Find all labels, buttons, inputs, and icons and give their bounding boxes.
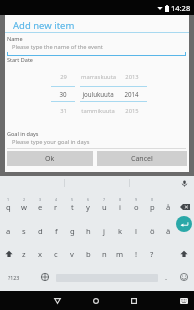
button[interactable]: Change language <box>36 267 54 287</box>
button[interactable]: c <box>48 243 64 264</box>
button[interactable]: e <box>32 196 48 217</box>
staticText: ! <box>135 249 138 259</box>
staticText: i <box>119 202 121 212</box>
staticText: Start Date <box>7 56 33 63</box>
button[interactable]: Shift <box>0 243 18 264</box>
button[interactable]: h <box>80 220 96 241</box>
button[interactable]: ?123 <box>1 267 27 287</box>
staticText: v <box>70 249 74 259</box>
button[interactable]: o <box>128 196 144 217</box>
staticText: m <box>116 249 124 259</box>
button[interactable]: r <box>48 196 64 217</box>
button[interactable]: k <box>112 220 128 241</box>
button[interactable]: ! <box>128 243 144 264</box>
staticText: 14:28 <box>171 3 191 13</box>
button[interactable]: . <box>159 267 173 287</box>
button[interactable]: marraskuuta <box>74 70 122 84</box>
button[interactable]: Recent apps <box>122 291 146 310</box>
staticText: a <box>6 226 11 236</box>
staticText: 0 <box>151 197 154 202</box>
staticText: 4 <box>55 197 58 202</box>
staticText: t <box>71 202 74 212</box>
button[interactable]: v <box>64 243 80 264</box>
button[interactable]: f <box>48 220 64 241</box>
staticText: Please type your goal in days <box>12 138 90 146</box>
staticText: 2015 <box>125 107 139 115</box>
staticText: o <box>134 202 139 212</box>
staticText: l <box>135 226 137 236</box>
staticText: w <box>21 202 27 212</box>
staticText: 7 <box>103 197 106 202</box>
button[interactable]: Back <box>45 291 69 310</box>
staticText: j <box>103 226 105 236</box>
button[interactable]: a <box>0 220 16 241</box>
staticText: 9 <box>135 197 138 202</box>
button[interactable]: 30 <box>45 87 81 101</box>
staticText: e <box>38 202 43 212</box>
button[interactable]: 2013 <box>110 70 153 84</box>
button[interactable]: t <box>64 196 80 217</box>
button[interactable]: u <box>96 196 112 217</box>
staticText: 3 <box>39 197 42 202</box>
button[interactable]: i <box>112 196 128 217</box>
staticText: f <box>55 226 58 236</box>
staticText: p <box>150 202 155 212</box>
button[interactable]: Cancel <box>97 151 187 166</box>
button[interactable]: j <box>96 220 112 241</box>
button[interactable]: w <box>16 196 32 217</box>
button[interactable]: 31 <box>45 104 81 118</box>
staticText: s <box>22 226 26 236</box>
staticText: 29 <box>60 73 67 81</box>
button[interactable]: d <box>32 220 48 241</box>
button[interactable]: Voice input <box>178 177 191 190</box>
staticText: marraskuuta <box>81 73 116 81</box>
staticText: Name <box>7 35 23 42</box>
staticText: b <box>86 249 91 259</box>
button[interactable]: Ok <box>7 151 93 166</box>
button[interactable]: ö <box>144 220 160 241</box>
staticText: z <box>22 249 26 259</box>
button[interactable]: 29 <box>45 70 81 84</box>
button[interactable]: y <box>80 196 96 217</box>
button[interactable]: x <box>32 243 48 264</box>
button[interactable]: Enter <box>176 216 192 232</box>
staticText: 2014 <box>124 90 139 98</box>
staticText: joulukuuta <box>82 90 114 98</box>
button[interactable]: joulukuuta <box>74 87 122 101</box>
button[interactable]: Shift <box>175 243 193 264</box>
button[interactable]: n <box>96 243 112 264</box>
staticText: Add new item <box>13 19 75 32</box>
button[interactable]: m <box>112 243 128 264</box>
button[interactable]: ? <box>144 243 160 264</box>
button[interactable]: p <box>144 196 160 217</box>
button[interactable]: Switch keyboard <box>174 291 194 310</box>
button[interactable]: z <box>16 243 32 264</box>
button[interactable]: Emoji <box>175 267 193 287</box>
button[interactable]: b <box>80 243 96 264</box>
button[interactable]: å <box>160 196 176 217</box>
staticText: ? <box>150 249 154 259</box>
button[interactable]: Home <box>84 291 108 310</box>
staticText: c <box>54 249 58 259</box>
button[interactable]: q <box>0 196 16 217</box>
staticText: d <box>38 226 43 236</box>
staticText: n <box>102 249 107 259</box>
staticText: g <box>70 226 75 236</box>
button[interactable]: tammikuuta <box>74 104 122 118</box>
staticText: 5 <box>71 197 74 202</box>
button[interactable]: ä <box>160 220 176 241</box>
button[interactable]: s <box>16 220 32 241</box>
button[interactable]: Backspace <box>176 196 194 217</box>
staticText: Ok <box>45 154 55 164</box>
staticText: Please type the name of the event <box>12 43 103 51</box>
staticText: 30 <box>59 90 67 98</box>
button[interactable]: l <box>128 220 144 241</box>
button[interactable]: 2015 <box>110 104 153 118</box>
button[interactable]: g <box>64 220 80 241</box>
staticText: 6 <box>87 197 90 202</box>
staticText: 2 <box>23 197 26 202</box>
button[interactable]: 2014 <box>110 87 153 101</box>
staticText: y <box>86 202 90 212</box>
staticText: Cancel <box>131 154 153 164</box>
